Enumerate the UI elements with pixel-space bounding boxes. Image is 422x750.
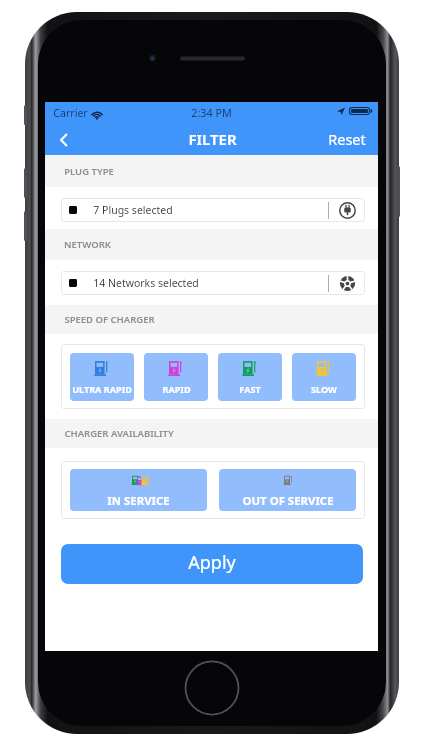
staticText: 7 Plugs selected bbox=[93, 203, 173, 217]
button[interactable]: SLOW bbox=[292, 353, 356, 401]
staticText: 2:34 PM bbox=[191, 105, 232, 120]
button[interactable]: FAST bbox=[218, 353, 282, 401]
staticText: ULTRA RAPID bbox=[72, 383, 132, 395]
staticText: FAST bbox=[239, 383, 261, 395]
button[interactable]: Apply bbox=[61, 544, 363, 584]
staticText: IN SERVICE bbox=[107, 493, 170, 509]
staticText: SLOW bbox=[311, 383, 337, 395]
staticText: NETWORK bbox=[64, 238, 111, 251]
button[interactable]: Back bbox=[45, 123, 87, 155]
staticText: OUT OF SERVICE bbox=[242, 493, 334, 509]
button[interactable]: OUT OF SERVICE bbox=[219, 469, 356, 511]
staticText: Apply bbox=[188, 550, 236, 575]
button[interactable]: RAPID bbox=[144, 353, 208, 401]
staticText: 14 Networks selected bbox=[93, 276, 199, 290]
button[interactable]: Reset bbox=[316, 123, 378, 155]
staticText: Reset bbox=[328, 129, 366, 149]
staticText: Carrier bbox=[53, 106, 88, 120]
staticText: PLUG TYPE bbox=[64, 165, 114, 178]
button[interactable]: 7 Plugs selected bbox=[61, 198, 365, 222]
button[interactable]: ULTRA RAPID bbox=[70, 353, 134, 401]
staticText: SPEED OF CHARGER bbox=[64, 313, 155, 326]
staticText: FILTER bbox=[188, 129, 237, 149]
staticText: CHARGER AVAILABILITY bbox=[64, 427, 174, 440]
staticText: RAPID bbox=[162, 383, 191, 395]
button[interactable]: 14 Networks selected bbox=[61, 271, 365, 295]
button[interactable]: IN SERVICE bbox=[70, 469, 207, 511]
